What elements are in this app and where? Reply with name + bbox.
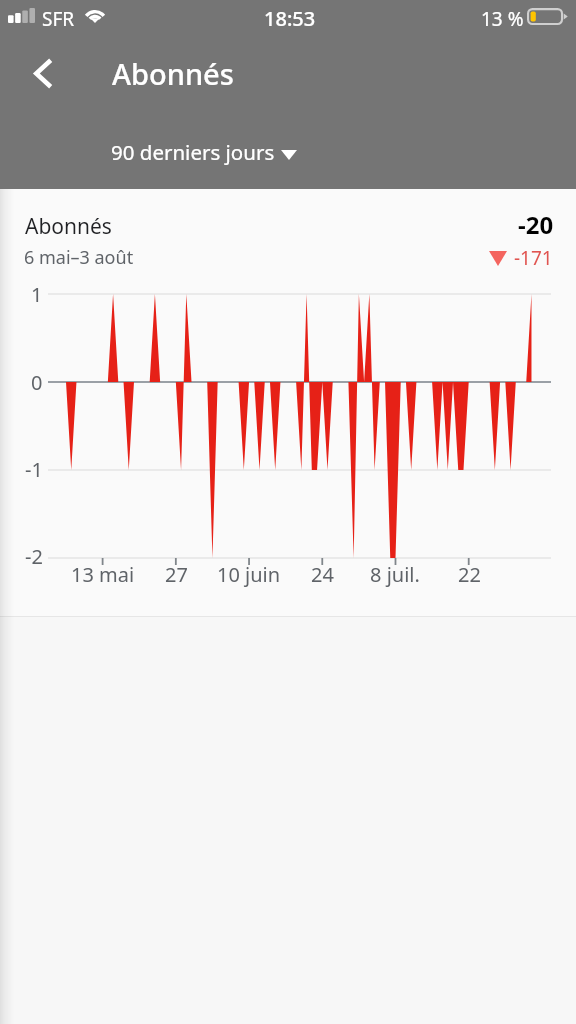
staticText: 6 mai–3 août — [24, 245, 134, 270]
staticText: 8 juil. — [370, 561, 420, 588]
staticText: -171 — [514, 245, 553, 271]
staticText: SFR — [42, 6, 75, 32]
staticText: 10 juin — [217, 561, 281, 588]
staticText: 90 derniers jours — [111, 138, 275, 166]
staticText: Abonnés — [112, 54, 234, 93]
staticText: Abonnés — [25, 212, 112, 241]
staticText: -1 — [25, 456, 43, 483]
staticText: -2 — [25, 543, 43, 570]
staticText: 13 mai — [71, 561, 135, 588]
staticText: -20 — [518, 208, 554, 241]
button[interactable]: Back — [13, 42, 73, 102]
button[interactable]: 90 derniers jours — [100, 132, 303, 172]
staticText: 24 — [311, 561, 334, 588]
staticText: 22 — [458, 561, 481, 588]
staticText: 18:53 — [264, 5, 316, 32]
staticText: 13 % — [481, 6, 524, 32]
staticText: 27 — [165, 561, 188, 588]
staticText: 0 — [31, 369, 43, 396]
staticText: 1 — [31, 281, 43, 308]
